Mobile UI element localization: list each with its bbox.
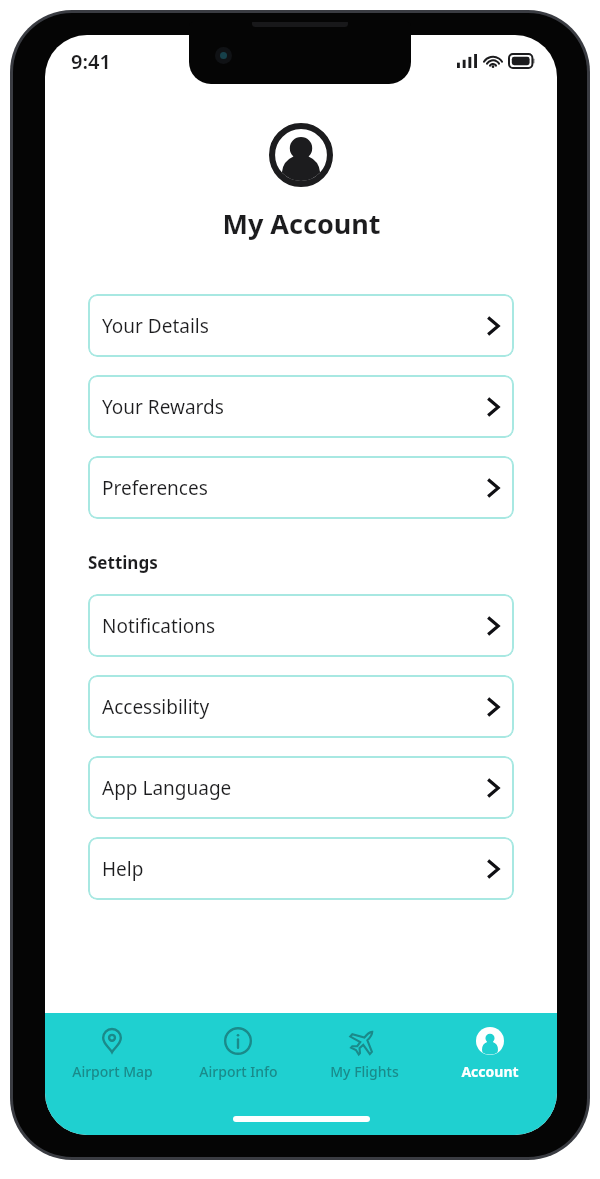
- button[interactable]: App Language: [88, 756, 514, 819]
- staticText: My Flights: [330, 1062, 399, 1081]
- other: Airport Info: [224, 1027, 252, 1055]
- button[interactable]: Accessibility: [88, 675, 514, 738]
- other: Airport Map: [98, 1027, 126, 1055]
- button[interactable]: Account: [431, 1023, 549, 1085]
- staticText: Notifications: [102, 613, 216, 639]
- staticText: Preferences: [102, 475, 208, 501]
- staticText: Settings: [88, 551, 158, 574]
- button[interactable]: Airport Info: [179, 1023, 297, 1085]
- button[interactable]: Notifications: [88, 594, 514, 657]
- button[interactable]: Your Rewards: [88, 375, 514, 438]
- staticText: Airport Map: [72, 1062, 153, 1081]
- button[interactable]: My Flights: [305, 1023, 423, 1085]
- staticText: Your Rewards: [102, 394, 224, 420]
- button[interactable]: Your Details: [88, 294, 514, 357]
- staticText: Account: [461, 1062, 519, 1081]
- staticText: My Account: [222, 205, 381, 242]
- staticText: 9:41: [71, 48, 111, 75]
- other: My Flights: [350, 1027, 378, 1055]
- staticText: Accessibility: [102, 694, 210, 720]
- button[interactable]: Help: [88, 837, 514, 900]
- staticText: App Language: [102, 775, 232, 801]
- other: Account: [476, 1027, 504, 1055]
- button[interactable]: Airport Map: [53, 1023, 171, 1085]
- button[interactable]: Preferences: [88, 456, 514, 519]
- staticText: Your Details: [102, 313, 209, 339]
- staticText: Help: [102, 856, 144, 882]
- staticText: Airport Info: [199, 1062, 278, 1081]
